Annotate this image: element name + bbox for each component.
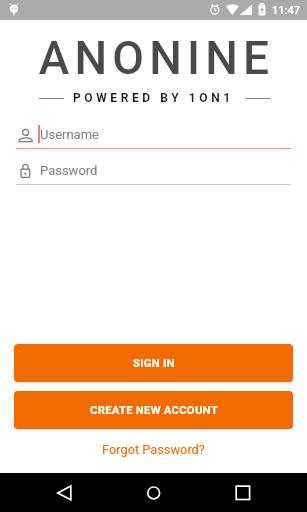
staticText: Username xyxy=(40,127,99,142)
staticText: CREATE NEW ACCOUNT xyxy=(90,404,218,417)
staticText: Password xyxy=(40,163,98,178)
staticText: POWERED BY 1ON1 xyxy=(73,91,234,105)
button[interactable]: Forgot Password? xyxy=(96,439,211,460)
button[interactable]: Back xyxy=(42,473,86,512)
staticText: 11:47 xyxy=(272,4,300,17)
button[interactable]: Home xyxy=(132,473,176,512)
button[interactable]: SIGN IN xyxy=(14,344,293,382)
staticText: ANONINE xyxy=(3,31,307,85)
button[interactable]: Recent apps xyxy=(221,473,265,512)
button[interactable]: CREATE NEW ACCOUNT xyxy=(14,391,293,429)
staticText: SIGN IN xyxy=(133,357,175,370)
